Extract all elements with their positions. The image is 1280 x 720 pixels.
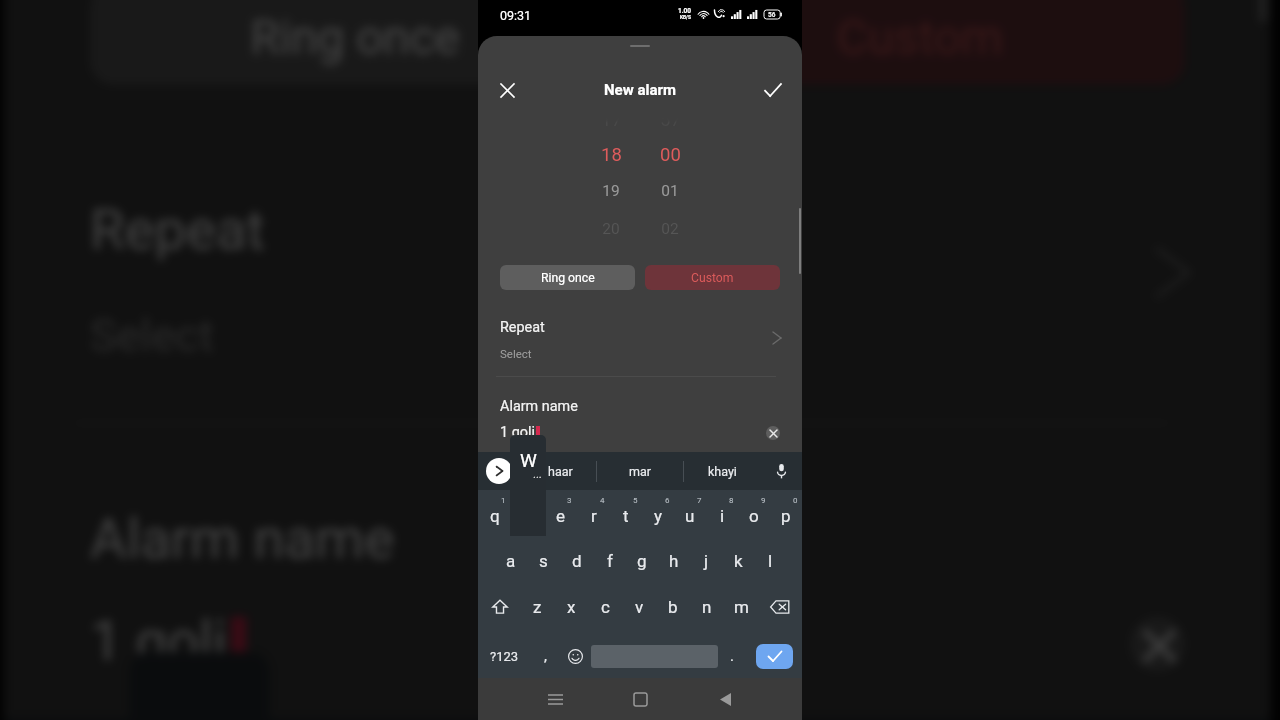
button[interactable]: Custom [645,265,780,290]
staticText: haar [548,464,573,479]
button[interactable]: l [754,541,786,580]
staticText: t [623,506,629,526]
button[interactable]: haar [539,452,581,490]
button[interactable]: Repeat [4,198,1271,359]
staticText: 4 [600,496,605,505]
button[interactable]: e [544,490,577,541]
staticText: p [781,506,791,526]
button[interactable]: t [610,490,642,541]
button[interactable]: g [626,541,658,580]
button[interactable]: Ring once [90,0,618,85]
button[interactable]: Repeat [478,319,802,360]
staticText: 09:31 [500,8,532,23]
button[interactable]: Clear text [1130,617,1185,671]
staticText: 01 [661,182,679,200]
button[interactable]: x [554,580,588,634]
button[interactable]: Recents [533,678,577,720]
button[interactable]: ?123 [478,634,531,678]
staticText: m [734,597,749,617]
button[interactable]: c [588,580,622,634]
button[interactable]: khayi [700,452,745,490]
button[interactable]: Voice input [761,452,801,490]
button[interactable]: Backspace [758,580,802,634]
button[interactable]: , [531,634,559,678]
button[interactable]: m [724,580,758,634]
staticText: 1 [501,496,506,505]
staticText: New alarm [604,81,676,99]
button[interactable]: j [690,541,722,580]
button[interactable]: Shift [478,580,521,634]
staticText: Alarm name [90,507,395,574]
button[interactable]: k [722,541,754,580]
staticText: Repeat [90,198,266,265]
staticText: x [567,597,576,617]
staticText: b [668,597,678,617]
staticText: , [544,647,547,665]
button[interactable]: z [521,580,554,634]
button[interactable]: p [770,490,802,541]
button[interactable]: v [622,580,656,634]
staticText: h [669,551,679,571]
button[interactable]: u [674,490,706,541]
button[interactable]: f [593,541,626,580]
staticText: u [685,506,695,526]
staticText: Select [90,308,215,359]
button[interactable]: mar [618,452,661,490]
staticText: 19 [602,182,620,200]
button[interactable] [511,490,544,541]
staticText: 02 [661,220,679,238]
button[interactable]: b [656,580,690,634]
button[interactable]: r [577,490,610,541]
staticText: v [635,597,644,617]
staticText: 0 [793,496,798,505]
button[interactable]: Enter [746,634,802,678]
staticText: . [730,647,734,665]
staticText: ?123 [490,649,519,664]
button[interactable]: n [690,580,724,634]
button[interactable]: Emoji [559,634,591,678]
button[interactable]: Close [492,75,522,105]
staticText: k [734,551,743,571]
staticText: 3 [567,496,572,505]
button[interactable]: o [738,490,770,541]
staticText: KB/S [680,15,691,21]
staticText: Repeat [500,319,545,336]
button[interactable]: Save alarm [758,75,788,105]
button[interactable]: a [494,541,527,580]
button[interactable]: d [560,541,593,580]
staticText: q [490,506,500,526]
button[interactable]: Back [703,678,747,720]
staticText: 7 [697,496,702,505]
button[interactable]: h [658,541,690,580]
staticText: 18 [601,144,622,166]
button[interactable]: q [478,490,511,541]
staticText: 56 [768,11,776,19]
staticText: c [601,597,610,617]
staticText: 8 [729,496,734,505]
button[interactable]: i [706,490,738,541]
button[interactable]: Space [591,634,718,678]
button[interactable]: Clear text [766,426,780,440]
staticText: l [768,551,773,571]
button[interactable]: Custom [657,0,1185,85]
button[interactable]: y [642,490,674,541]
staticText: f [607,551,613,571]
button[interactable]: s [527,541,560,580]
staticText: 20 [602,220,620,238]
staticText: r [591,506,597,526]
staticText: d [572,551,582,571]
staticText: 1 goli [90,609,227,675]
button[interactable]: Home [618,678,662,720]
staticText: g [637,551,647,571]
button[interactable]: . [718,634,746,678]
button[interactable]: More suggestions [486,458,512,484]
staticText: 6 [665,496,670,505]
button[interactable]: Ring once [500,265,635,290]
